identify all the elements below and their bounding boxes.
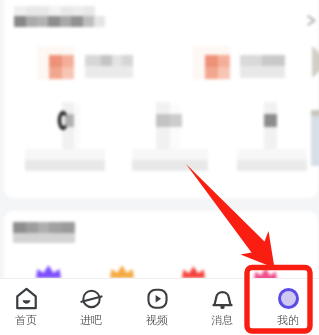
staticText: 进吧 bbox=[80, 313, 102, 327]
button[interactable]: 消息 bbox=[190, 278, 254, 335]
button[interactable]: 进吧 bbox=[59, 278, 123, 335]
button[interactable]: 视频 bbox=[125, 278, 189, 335]
other: 进吧 bbox=[81, 288, 102, 309]
other: 视频 bbox=[147, 288, 168, 309]
staticText: 视频 bbox=[146, 313, 168, 327]
staticText: 首页 bbox=[15, 313, 37, 327]
other: 我的 bbox=[278, 288, 299, 309]
button[interactable]: 首页 bbox=[0, 278, 58, 335]
staticText: 消息 bbox=[211, 313, 233, 327]
button[interactable]: 我的 bbox=[256, 278, 319, 335]
staticText: 我的 bbox=[277, 313, 299, 327]
other: 消息 bbox=[212, 288, 233, 309]
other: 首页 bbox=[16, 288, 37, 309]
